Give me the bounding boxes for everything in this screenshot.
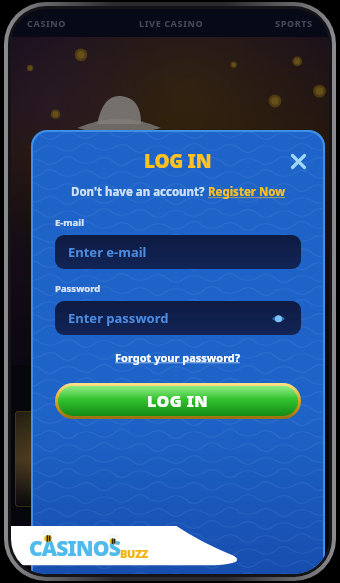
button[interactable]: Close bbox=[285, 148, 311, 174]
staticText: Register Now bbox=[208, 184, 286, 200]
staticText: BUZZ bbox=[120, 546, 148, 561]
button[interactable]: CASINO bbox=[23, 13, 71, 33]
button[interactable]: Enter password bbox=[55, 301, 301, 335]
staticText: SPORTS bbox=[275, 17, 313, 29]
button[interactable]: 1 bbox=[15, 411, 115, 507]
button[interactable]: Forgot your password? bbox=[113, 348, 243, 367]
staticText: Password bbox=[55, 282, 101, 295]
button[interactable]: 3 bbox=[224, 411, 325, 507]
staticText: Enter e-mail bbox=[68, 243, 147, 261]
staticText: LIVE CASINO bbox=[139, 17, 204, 29]
button[interactable]: 2 bbox=[119, 411, 220, 507]
staticText: CASINOS bbox=[29, 534, 120, 563]
button[interactable]: LIVE CASINO bbox=[135, 13, 208, 33]
button[interactable]: LOG IN bbox=[58, 386, 298, 416]
staticText: LOG IN bbox=[144, 148, 212, 174]
button[interactable]: Enter e-mail bbox=[55, 235, 301, 269]
button[interactable]: SPORTS bbox=[271, 13, 317, 33]
button[interactable]: Register Now bbox=[208, 184, 286, 200]
staticText: Enter password bbox=[68, 309, 169, 327]
staticText: 3 bbox=[308, 484, 316, 502]
staticText: 2 bbox=[203, 484, 211, 502]
staticText: CASINO bbox=[27, 17, 67, 29]
staticText: 1 bbox=[98, 484, 106, 502]
staticText: Forgot your password? bbox=[115, 350, 241, 365]
button[interactable]: Show password bbox=[268, 308, 288, 328]
staticText: Don't have an account? bbox=[71, 184, 208, 200]
staticText: LOG IN bbox=[147, 390, 209, 412]
staticText: E-mail bbox=[55, 216, 84, 229]
